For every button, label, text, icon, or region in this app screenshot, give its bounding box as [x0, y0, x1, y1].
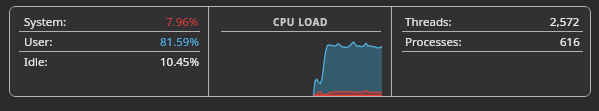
staticText: Processes: — [405, 34, 462, 50]
staticText: System: — [24, 14, 67, 30]
staticText: CPU LOAD — [273, 15, 328, 29]
button[interactable]: Threads: — [392, 12, 591, 32]
staticText: Idle: — [24, 54, 48, 70]
staticText: Threads: — [405, 14, 452, 30]
staticText: 81.59% — [160, 34, 199, 50]
staticText: User: — [24, 34, 53, 50]
staticText: 10.45% — [160, 54, 199, 70]
button[interactable]: Idle: — [9, 52, 208, 72]
staticText: 616 — [560, 34, 580, 50]
staticText: 2,572 — [550, 14, 580, 30]
button[interactable]: Processes: — [392, 32, 591, 52]
button[interactable]: User: — [9, 32, 208, 52]
button[interactable]: System: — [9, 12, 208, 32]
staticText: 7.96% — [166, 14, 199, 30]
